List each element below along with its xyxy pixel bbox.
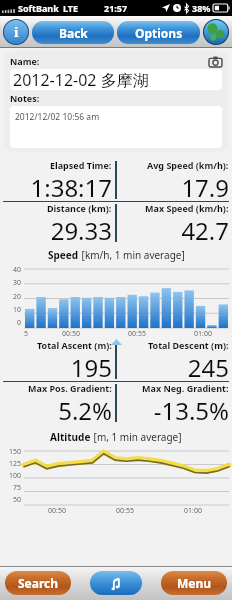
staticText: Max Pos. Gradient: [28, 382, 112, 394]
staticText: Distance (km): [47, 202, 112, 214]
staticText: 245 [187, 351, 229, 381]
staticText: 17.9 [181, 171, 229, 201]
staticText: LTE [63, 2, 79, 14]
staticText: [m, 1 min average] [91, 430, 182, 444]
button[interactable]: Info [3, 19, 29, 45]
staticText: 01:00 [194, 329, 212, 339]
staticText: Notes: [10, 92, 40, 104]
staticText: Search [18, 575, 59, 591]
staticText: 195 [70, 351, 112, 381]
staticText: 42.7 [181, 214, 229, 244]
staticText: i [14, 23, 19, 41]
staticText: 21:57 [104, 2, 128, 14]
staticText: Total Descent (m): [148, 339, 229, 351]
staticText: Avg Speed (km/h): [147, 159, 229, 171]
button[interactable]: Search [5, 571, 71, 595]
staticText: 75 [13, 483, 22, 493]
staticText: Total Ascent (m): [37, 339, 112, 351]
button[interactable]: 2012-12-02 多摩湖 [10, 69, 222, 90]
staticText: 30 [13, 278, 22, 288]
staticText: Max Neg. Gradient: [142, 382, 229, 394]
staticText: 50 [13, 495, 22, 505]
staticText: 150 [9, 447, 22, 457]
staticText: 00:50 [62, 329, 80, 339]
staticText: 100 [9, 471, 22, 481]
staticText: SoftBank [18, 2, 59, 14]
staticText: Max Speed (km/h): [145, 202, 229, 214]
staticText: Back [59, 25, 88, 41]
staticText: 00:50 [48, 506, 66, 516]
staticText: Speed [48, 248, 79, 262]
staticText: 01:00 [184, 506, 202, 516]
button[interactable]: Options [117, 21, 200, 44]
staticText: Name: [10, 55, 40, 67]
staticText: 38% [192, 2, 211, 14]
staticText: 0 [17, 318, 22, 328]
staticText: 2012/12/02 10:56 am [15, 111, 100, 123]
staticText: Options [135, 25, 183, 41]
staticText: 5 [24, 329, 29, 339]
staticText: 1:38:17 [30, 171, 112, 201]
button[interactable]: Menu [161, 571, 227, 595]
button[interactable]: 2012/12/02 10:56 am [10, 106, 222, 148]
staticText: Menu [177, 575, 212, 591]
staticText: [km/h, 1 min average] [79, 248, 185, 262]
staticText: -13.5% [153, 394, 229, 424]
staticText: 29.33 [50, 214, 112, 244]
staticText: Altitude [50, 430, 91, 444]
staticText: 00:55 [128, 329, 146, 339]
staticText: 2012-12-02 多摩湖 [13, 69, 149, 90]
staticText: 5.2% [58, 394, 112, 424]
button[interactable]: Camera [209, 56, 222, 67]
button[interactable]: Map [203, 19, 229, 45]
button[interactable]: Music [90, 571, 142, 595]
staticText: 40 [13, 265, 22, 275]
staticText: 125 [9, 459, 22, 469]
button[interactable]: Back [32, 21, 114, 44]
staticText: 00:55 [116, 506, 134, 516]
staticText: Elapsed Time: [50, 159, 112, 171]
staticText: 10 [13, 305, 22, 315]
staticText: 20 [13, 292, 22, 302]
